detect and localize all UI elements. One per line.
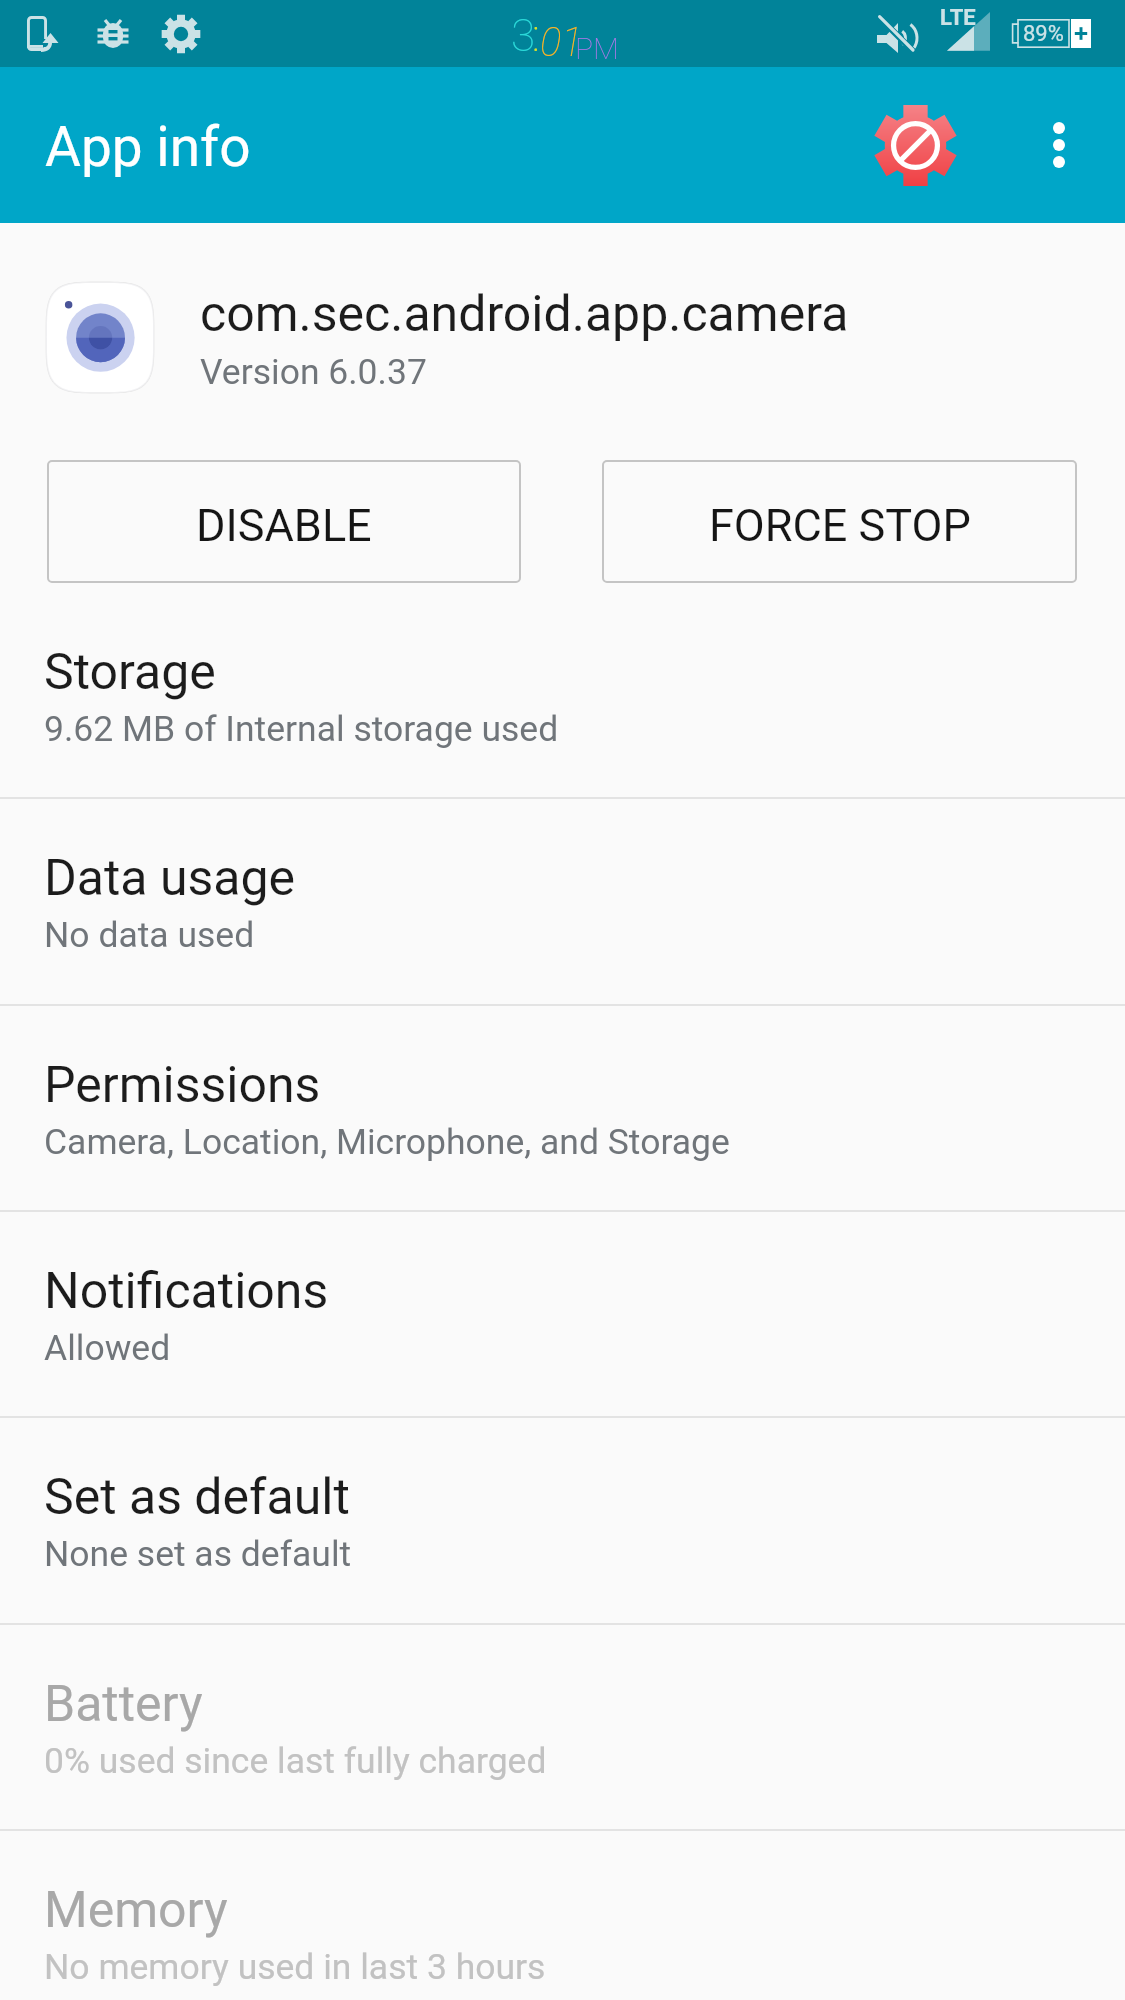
staticText: Memory	[44, 1881, 228, 1940]
staticText: No data used	[44, 914, 255, 956]
staticText: 0% used since last fully charged	[44, 1740, 547, 1782]
staticText: Camera, Location, Microphone, and Storag…	[44, 1121, 730, 1163]
staticText: 89%	[1023, 21, 1064, 47]
staticText: Notifications	[44, 1262, 329, 1321]
staticText: Storage	[44, 643, 216, 702]
button[interactable]: Permissions	[0, 1006, 1125, 1210]
button[interactable]: DISABLE	[47, 460, 521, 583]
button[interactable]: Battery	[0, 1625, 1125, 1829]
staticText: com.sec.android.app.camera	[200, 285, 849, 344]
button[interactable]: Notifications	[0, 1212, 1125, 1416]
staticText: Allowed	[44, 1327, 171, 1369]
staticText: Battery	[44, 1675, 203, 1734]
staticText: Permissions	[44, 1056, 321, 1115]
button[interactable]: Storage	[0, 593, 1125, 797]
button[interactable]: Memory	[0, 1831, 1125, 2000]
staticText: 3	[511, 10, 536, 62]
staticText: Version 6.0.37	[200, 351, 427, 393]
button[interactable]: More options	[1011, 97, 1107, 193]
button[interactable]: Data usage	[0, 799, 1125, 1004]
staticText: FORCE STOP	[709, 499, 971, 552]
button[interactable]: App permissions disabled	[855, 85, 975, 205]
button[interactable]: Set as default	[0, 1418, 1125, 1623]
staticText: 01	[540, 19, 583, 66]
staticText: 9.62 MB of Internal storage used	[44, 708, 559, 750]
staticText: No memory used in last 3 hours	[44, 1946, 546, 1988]
staticText: :	[532, 10, 540, 62]
button[interactable]: FORCE STOP	[602, 460, 1077, 583]
staticText: LTE	[940, 5, 976, 31]
staticText: DISABLE	[196, 499, 372, 552]
staticText: App info	[45, 115, 251, 179]
staticText: PM	[575, 31, 619, 66]
staticText: Data usage	[44, 849, 296, 908]
staticText: None set as default	[44, 1533, 352, 1575]
staticText: Set as default	[44, 1468, 350, 1527]
